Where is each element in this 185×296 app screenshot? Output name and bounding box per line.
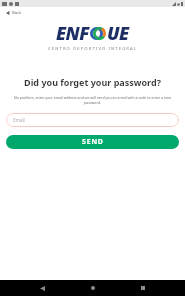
staticText: UE [107, 21, 129, 46]
staticText: No problem, enter your email address and… [7, 95, 178, 105]
button[interactable]: SEND [6, 135, 179, 149]
staticText: Back [12, 10, 22, 16]
button[interactable]: Recent apps [135, 280, 151, 296]
button[interactable]: Email [6, 113, 179, 127]
button[interactable]: Home [85, 280, 101, 296]
staticText: CENTRO DEPORTIVO INTEGRAL [48, 46, 138, 52]
button[interactable]: Back [34, 280, 50, 296]
button[interactable]: Back [4, 8, 24, 18]
staticText: ENF [56, 21, 89, 46]
staticText: SEND [82, 137, 104, 147]
staticText: Did you forget your password? [0, 76, 185, 88]
staticText: Email [13, 117, 25, 123]
